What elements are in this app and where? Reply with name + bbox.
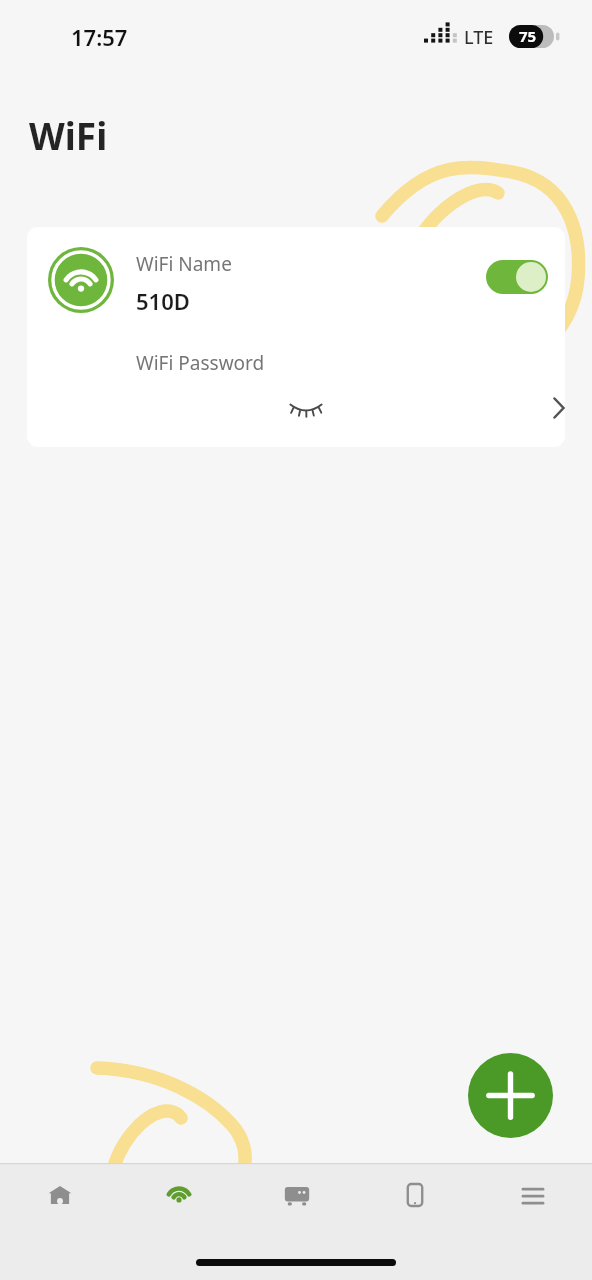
button[interactable]: Router — [238, 1163, 356, 1227]
button[interactable]: Open WiFi details — [539, 388, 565, 428]
staticText: WiFi Name — [136, 251, 232, 277]
staticText: 17:57 — [71, 22, 128, 52]
button[interactable]: Toggle WiFi — [486, 260, 548, 294]
staticText: 510D — [136, 286, 190, 316]
staticText: LTE — [464, 25, 494, 50]
button[interactable]: WiFi network — [27, 227, 565, 447]
button[interactable]: WiFi — [119, 1163, 238, 1227]
button[interactable]: Devices — [356, 1163, 474, 1227]
staticText: 75 — [519, 26, 537, 46]
staticText: WiFi — [29, 110, 108, 160]
staticText: WiFi Password — [136, 350, 265, 376]
other: WiFi network — [48, 247, 114, 313]
button[interactable]: Show password — [278, 389, 334, 425]
button[interactable]: More — [474, 1163, 592, 1227]
button[interactable]: Home — [0, 1163, 119, 1227]
button[interactable]: Add network — [468, 1053, 553, 1138]
